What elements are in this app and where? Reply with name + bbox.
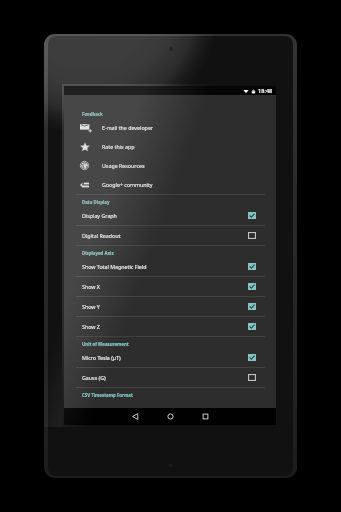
button[interactable]: Display Graph: [64, 206, 276, 225]
staticText: Feedback: [82, 111, 103, 117]
staticText: Show Z: [82, 323, 248, 330]
button[interactable]: Usage Resources: [64, 156, 276, 175]
button[interactable]: Google+ community: [64, 175, 276, 194]
button[interactable]: Back: [118, 408, 153, 425]
button[interactable]: Rate this app: [64, 137, 276, 156]
staticText: Google+ community: [102, 181, 153, 188]
button[interactable]: Home: [153, 408, 188, 425]
staticText: E-mail the developer: [102, 124, 154, 131]
staticText: Rate this app: [102, 143, 135, 150]
button[interactable]: Gauss (G): [64, 368, 276, 387]
button[interactable]: Show Y: [64, 297, 276, 316]
button[interactable]: Recents: [188, 408, 223, 425]
staticText: Data Display: [82, 199, 110, 205]
staticText: Usage Resources: [102, 162, 145, 169]
staticText: Gauss (G): [82, 374, 248, 381]
button[interactable]: Micro Tesla (µT): [64, 348, 276, 367]
button[interactable]: Show Total Magnetic Field: [64, 257, 276, 276]
staticText: Digital Readout: [82, 232, 248, 239]
staticText: Micro Tesla (µT): [82, 354, 248, 361]
button[interactable]: Digital Readout: [64, 226, 276, 245]
staticText: Display Graph: [82, 212, 248, 219]
staticText: 18:48: [258, 87, 273, 95]
staticText: Unit of Measurement: [82, 341, 129, 347]
staticText: Displayed Axis: [82, 250, 114, 256]
staticText: Show Y: [82, 303, 248, 310]
button[interactable]: Show Z: [64, 317, 276, 336]
staticText: Show Total Magnetic Field: [82, 263, 248, 270]
staticText: CSV Timestamp Format: [82, 392, 133, 398]
button[interactable]: E-mail the developer: [64, 118, 276, 137]
button[interactable]: Show X: [64, 277, 276, 296]
staticText: Show X: [82, 283, 248, 290]
